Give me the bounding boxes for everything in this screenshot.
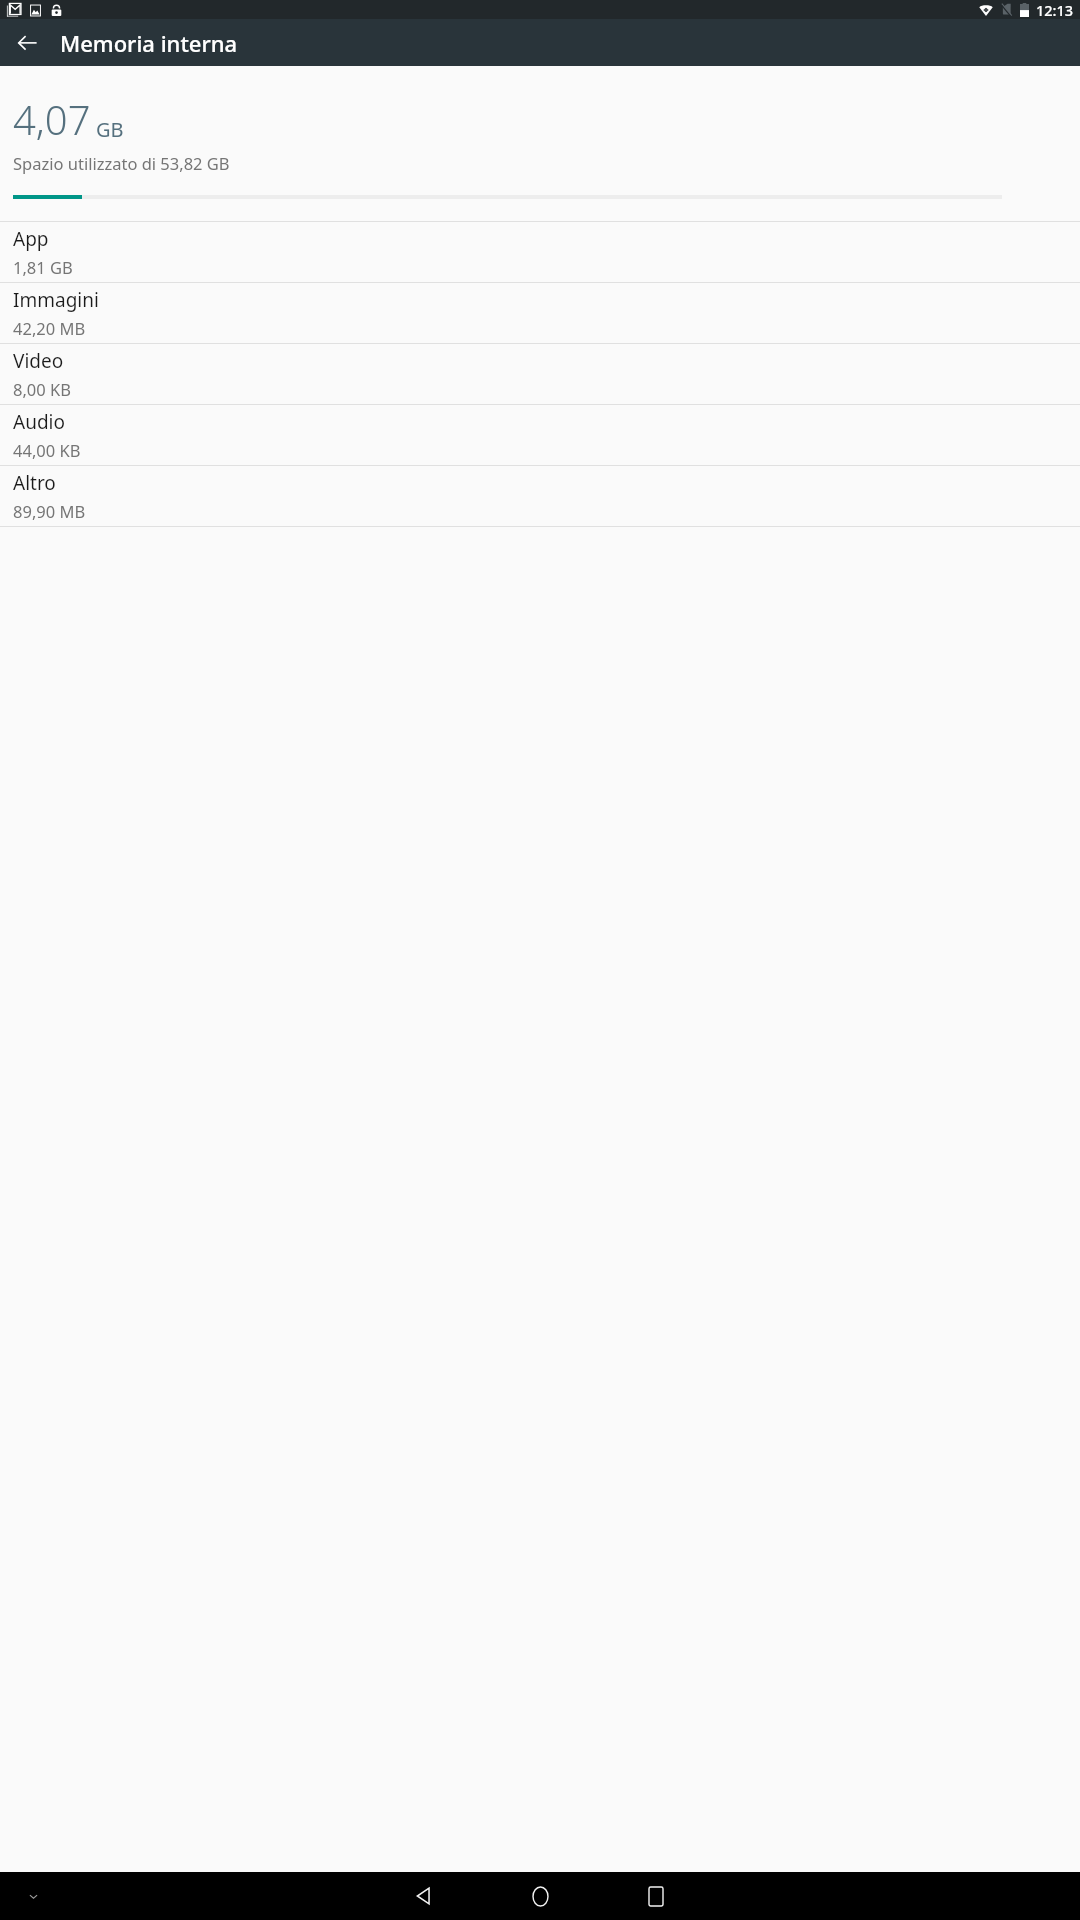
- staticText: 8,00 KB: [13, 378, 71, 400]
- staticText: 42,20 MB: [13, 317, 86, 339]
- staticText: Video: [13, 348, 64, 374]
- button[interactable]: Home: [501, 1872, 579, 1920]
- staticText: GB: [96, 116, 124, 143]
- button[interactable]: App: [0, 222, 1080, 282]
- button[interactable]: Recent apps: [617, 1872, 695, 1920]
- staticText: 4,07: [13, 92, 91, 146]
- staticText: 89,90 MB: [13, 500, 86, 522]
- button[interactable]: Back: [7, 22, 48, 63]
- button[interactable]: Immagini: [0, 283, 1080, 343]
- staticText: 44,00 KB: [13, 439, 81, 461]
- staticText: Audio: [13, 409, 65, 435]
- button[interactable]: Back: [385, 1872, 463, 1920]
- button[interactable]: Video: [0, 344, 1080, 404]
- button[interactable]: Audio: [0, 405, 1080, 465]
- staticText: 1,81 GB: [13, 256, 73, 278]
- staticText: Immagini: [13, 287, 99, 313]
- staticText: Spazio utilizzato di 53,82 GB: [13, 152, 230, 174]
- staticText: App: [13, 226, 49, 252]
- staticText: 12:13: [1036, 0, 1074, 19]
- button[interactable]: Hide: [13, 1876, 53, 1916]
- button[interactable]: Altro: [0, 466, 1080, 526]
- staticText: Altro: [13, 470, 56, 496]
- staticText: Memoria interna: [60, 28, 238, 58]
